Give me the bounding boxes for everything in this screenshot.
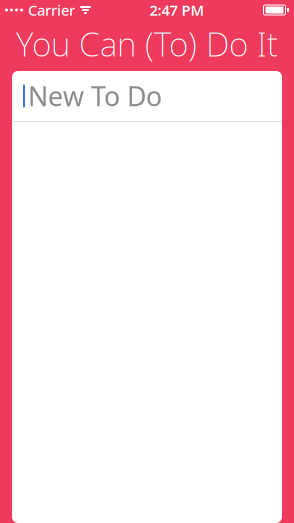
staticText: 2:47 PM <box>149 0 204 20</box>
staticText: Carrier <box>28 0 75 20</box>
staticText: New To Do <box>28 78 162 114</box>
staticText: You Can (To) Do It <box>16 21 278 66</box>
button[interactable]: New To Do <box>12 71 282 121</box>
